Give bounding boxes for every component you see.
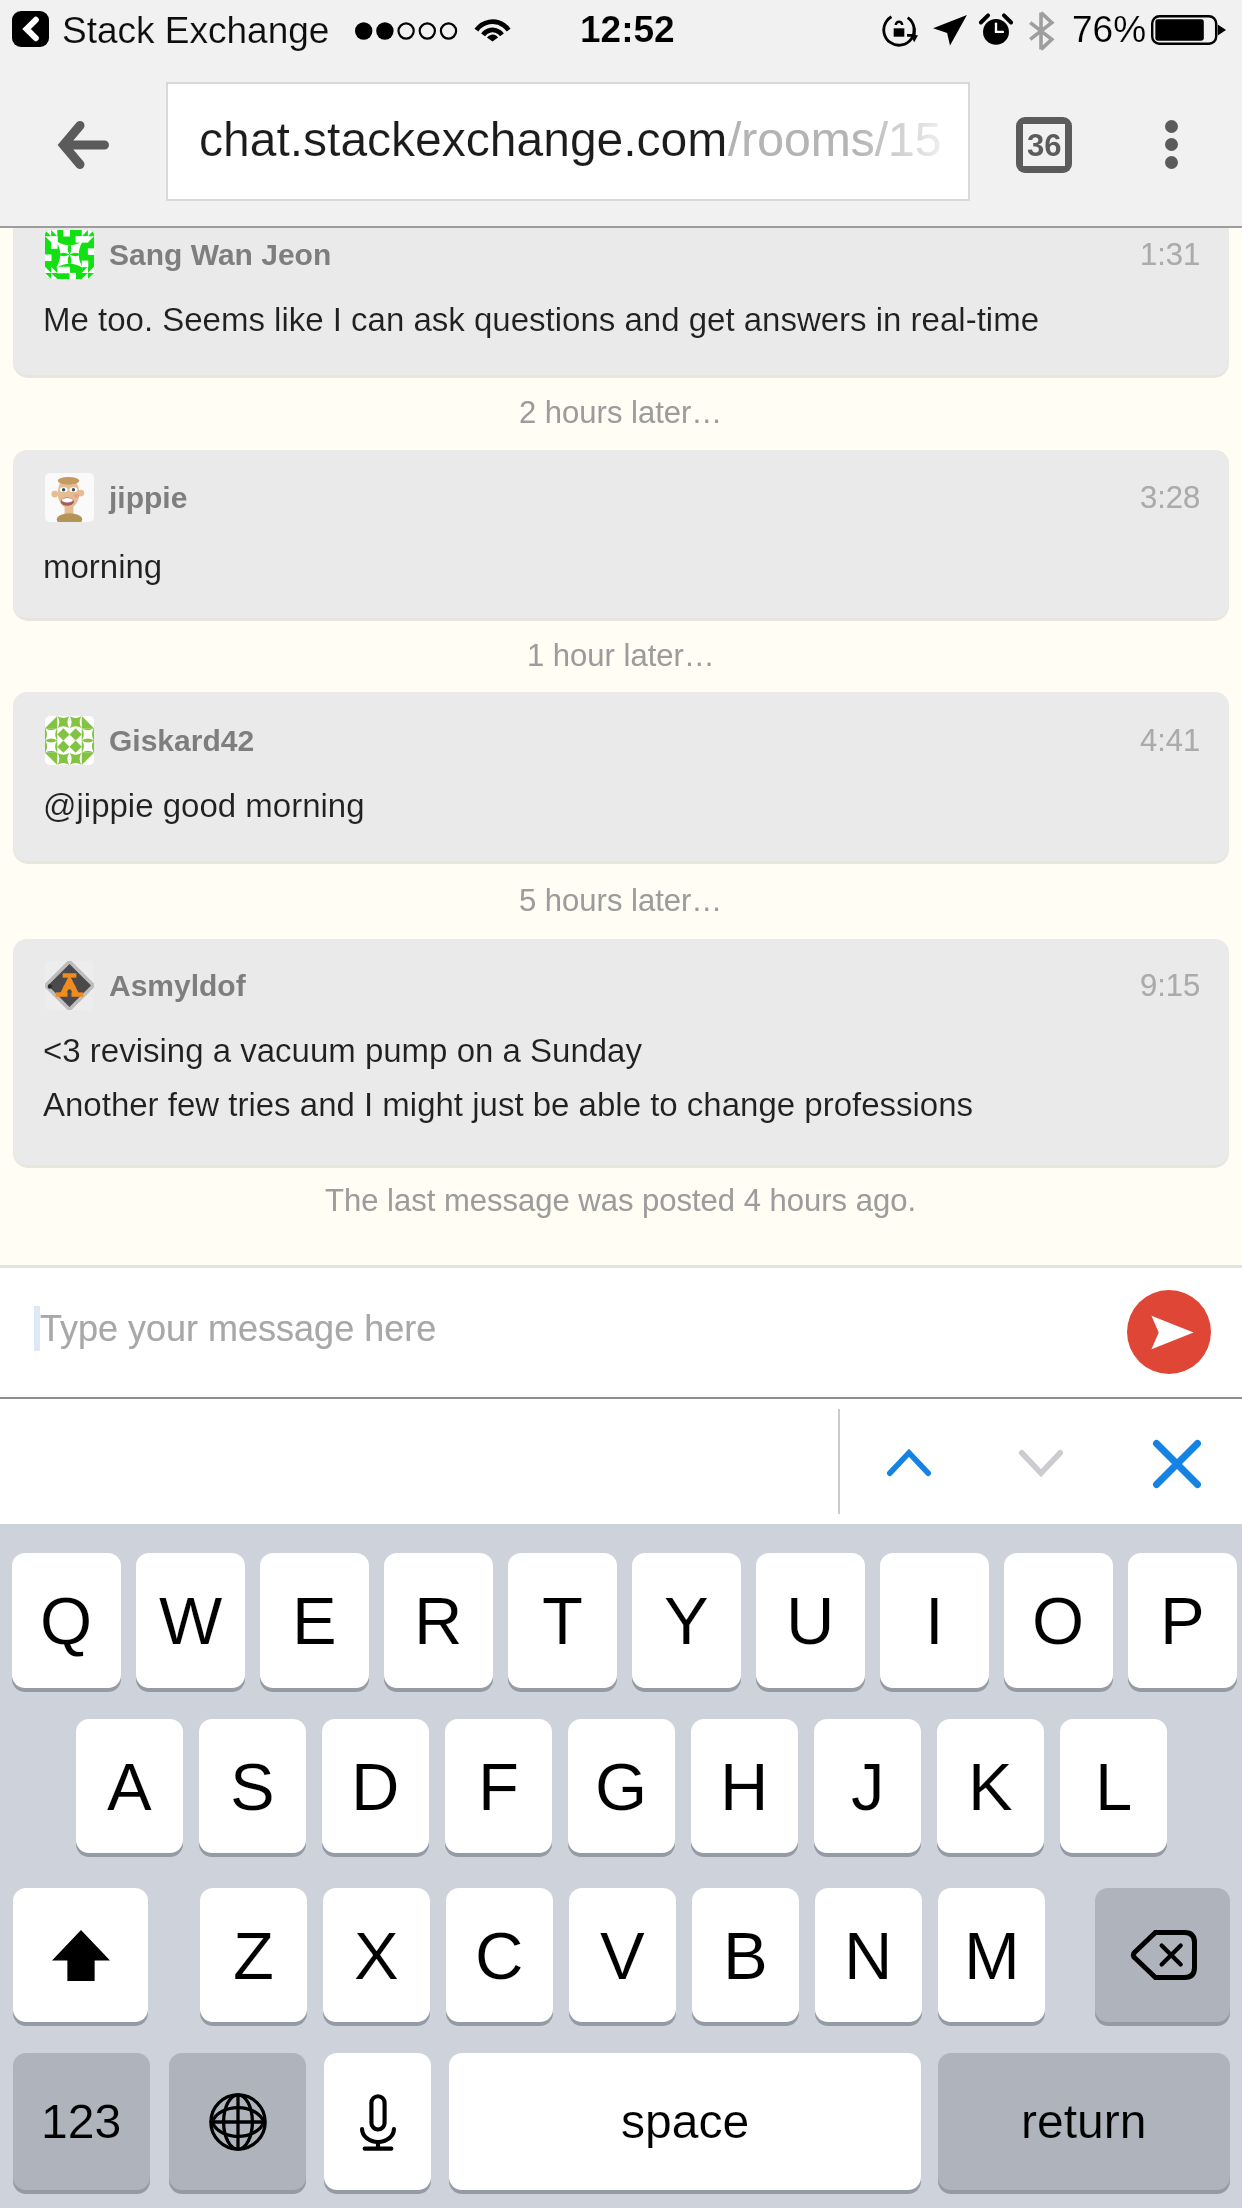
staticText: 1 hour later… (527, 638, 715, 673)
staticText: C (475, 1918, 524, 1993)
button[interactable]: Space (449, 2053, 921, 2190)
button[interactable]: S (199, 1719, 306, 1853)
button[interactable]: N (815, 1888, 922, 2022)
staticText: The last message was posted 4 hours ago. (325, 1183, 917, 1218)
staticText: <3 revising a vacuum pump on a Sunday (43, 1032, 642, 1069)
button[interactable]: I (880, 1553, 989, 1688)
staticText: Me too. Seems like I can ask questions a… (43, 301, 1039, 338)
staticText: /rooms/15 (728, 113, 942, 167)
button[interactable]: Y (632, 1553, 741, 1688)
staticText: A (107, 1749, 152, 1824)
button[interactable]: Back to Stack Exchange (12, 11, 49, 47)
button[interactable]: More options (1133, 106, 1209, 182)
staticText: J (851, 1749, 885, 1824)
staticText: R (414, 1583, 463, 1658)
staticText: H (720, 1749, 769, 1824)
button[interactable]: Z (200, 1888, 307, 2022)
staticText: space (621, 2095, 750, 2149)
staticText: Y (664, 1583, 709, 1658)
button[interactable]: Change keyboard (169, 2053, 306, 2190)
button[interactable]: D (322, 1719, 429, 1853)
button[interactable]: T (508, 1553, 617, 1688)
button[interactable]: P (1128, 1553, 1237, 1688)
button[interactable]: X (323, 1888, 430, 2022)
button[interactable]: C (446, 1888, 553, 2022)
staticText: Z (233, 1918, 274, 1993)
staticText: E (292, 1583, 337, 1658)
button[interactable]: Q (12, 1553, 121, 1688)
button[interactable]: W (136, 1553, 245, 1688)
button[interactable]: Next field (995, 1417, 1087, 1509)
button[interactable]: K (937, 1719, 1044, 1853)
button[interactable]: Shift (13, 1888, 148, 2022)
button[interactable]: H (691, 1719, 798, 1853)
button[interactable]: E (260, 1553, 369, 1688)
button[interactable]: Giskard42 (13, 692, 1229, 861)
button[interactable]: L (1060, 1719, 1167, 1853)
button[interactable]: V (569, 1888, 676, 2022)
button[interactable]: J (814, 1719, 921, 1853)
button[interactable]: Send (1127, 1290, 1211, 1374)
staticText: K (968, 1749, 1013, 1824)
button[interactable]: M (938, 1888, 1045, 2022)
staticText: chat.stackexchange.com (199, 113, 728, 167)
button[interactable]: Backspace (1095, 1888, 1230, 2022)
staticText: T (542, 1583, 583, 1658)
button[interactable]: O (1004, 1553, 1113, 1688)
staticText: 36 (1027, 128, 1062, 163)
staticText: 12:52 (580, 9, 675, 50)
staticText: morning (43, 548, 163, 585)
staticText: Q (40, 1583, 93, 1658)
button[interactable]: Return (938, 2053, 1230, 2190)
button[interactable]: jippie (13, 450, 1229, 618)
staticText: F (478, 1749, 519, 1824)
button[interactable]: U (756, 1553, 865, 1688)
staticText: B (723, 1918, 768, 1993)
staticText: 76% (1072, 9, 1147, 50)
staticText: 123 (41, 2095, 122, 2149)
button[interactable]: Dictation (324, 2053, 431, 2190)
staticText: Stack Exchange (62, 10, 330, 51)
button[interactable]: B (692, 1888, 799, 2022)
staticText: N (844, 1918, 893, 1993)
staticText: U (786, 1583, 835, 1658)
staticText: 9:15 (1140, 968, 1201, 1003)
staticText: O (1032, 1583, 1085, 1658)
staticText: 1:31 (1140, 237, 1201, 272)
button[interactable]: Type your message here (34, 1263, 1094, 1393)
button[interactable]: Numbers (13, 2053, 150, 2190)
button[interactable]: Tabs (1008, 109, 1080, 181)
button[interactable]: Back (50, 111, 118, 179)
staticText: jippie (109, 481, 188, 515)
staticText: D (351, 1749, 400, 1824)
button[interactable]: Asmyldof (13, 939, 1229, 1165)
staticText: return (1021, 2095, 1147, 2149)
staticText: Type your message here (40, 1308, 437, 1348)
staticText: Sang Wan Jeon (109, 238, 332, 272)
staticText: I (925, 1583, 944, 1658)
staticText: 4:41 (1140, 723, 1201, 758)
staticText: G (595, 1749, 648, 1824)
button[interactable]: Close keyboard (1131, 1418, 1223, 1510)
staticText: Asmyldof (109, 969, 246, 1003)
staticText: M (964, 1918, 1020, 1993)
staticText: V (600, 1918, 645, 1993)
staticText: L (1095, 1749, 1133, 1824)
staticText: 5 hours later… (519, 883, 723, 918)
staticText: W (159, 1583, 223, 1658)
staticText: S (230, 1749, 275, 1824)
button[interactable]: G (568, 1719, 675, 1853)
button[interactable]: R (384, 1553, 493, 1688)
staticText: P (1160, 1583, 1205, 1658)
button[interactable]: Sang Wan Jeon (13, 228, 1229, 375)
staticText: X (354, 1918, 399, 1993)
staticText: Giskard42 (109, 724, 255, 758)
button[interactable]: chat.stackexchange.com (167, 83, 969, 200)
button[interactable]: F (445, 1719, 552, 1853)
button[interactable]: A (76, 1719, 183, 1853)
button[interactable]: Previous field (863, 1417, 955, 1509)
staticText: Another few tries and I might just be ab… (43, 1086, 974, 1123)
staticText: @jippie good morning (43, 787, 365, 824)
staticText: 3:28 (1140, 480, 1201, 515)
staticText: 2 hours later… (519, 395, 723, 430)
